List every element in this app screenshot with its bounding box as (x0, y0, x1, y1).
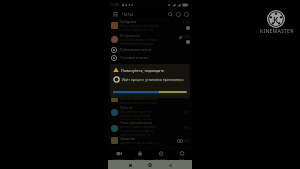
staticText: Настройки (154, 157, 168, 160)
staticText: Голосовое в канале (120, 56, 149, 60)
button[interactable]: Recents (127, 162, 133, 168)
staticText: Звонки (135, 157, 144, 160)
staticText: 9:31 (184, 111, 190, 115)
staticText: K (273, 14, 279, 25)
button[interactable]: Home (147, 162, 153, 168)
button[interactable]: Работа (108, 105, 192, 120)
staticText: на следующей неделе (120, 118, 153, 120)
staticText: 9:58 (184, 96, 190, 100)
staticText: Заметки (120, 136, 135, 141)
staticText: 11:06 (111, 3, 120, 7)
staticText: 10:47 (183, 35, 190, 39)
staticText: 7 (187, 40, 189, 44)
button[interactable]: Calls (174, 10, 182, 18)
staticText: Telegram (120, 19, 136, 24)
staticText: Контакты (113, 157, 125, 160)
button[interactable]: Чаты (171, 150, 192, 161)
staticText: полезные ссылки тут (120, 133, 151, 136)
button[interactable]: Чаты Дизайнеров (108, 120, 192, 136)
staticText: разные новости дизайна (120, 125, 157, 129)
staticText: KINEMASTER (260, 28, 294, 35)
button[interactable]: Search (166, 10, 174, 18)
staticText: Публикация в канале (120, 48, 152, 52)
staticText: коротко о том что надо тут (120, 141, 160, 145)
button[interactable]: Telegram (108, 18, 192, 32)
button[interactable]: More options (182, 10, 190, 18)
staticText: и много нового в этом (120, 28, 153, 32)
staticText: Работа (120, 105, 133, 110)
staticText: Ссылка на видео, которое (120, 38, 158, 42)
staticText: Пожалуйста, подождите (121, 68, 165, 73)
button[interactable]: Menu (112, 10, 119, 17)
staticText: Идёт процесс установки приложения (122, 77, 184, 82)
staticText: 9:04 (184, 126, 190, 130)
button[interactable]: Голосовое в канале (108, 54, 192, 62)
staticText: Чаты Дизайнеров (120, 120, 152, 125)
staticText: 8:42 (184, 139, 190, 143)
button[interactable]: Заметки (108, 136, 192, 145)
staticText: Избранное (120, 33, 140, 38)
staticText: Чаты (122, 11, 134, 17)
staticText: и сроки выполнения (120, 114, 151, 118)
button[interactable]: Публикация в канале (108, 46, 192, 54)
staticText: Новое обновление уже тут (120, 24, 159, 28)
staticText: 3 (187, 26, 189, 30)
staticText: Вышла новая бета версия (120, 97, 159, 101)
staticText: 11:03 (183, 21, 190, 25)
button[interactable]: Избранное (108, 32, 192, 46)
staticText: для тех кто хочет тестить (120, 101, 157, 105)
button[interactable]: Звонки (129, 150, 150, 161)
staticText: обязательно посмотри (120, 42, 154, 46)
staticText: Обсуждение проекта (120, 110, 151, 114)
staticText: Чаты (178, 157, 185, 160)
staticText: Обновления (120, 92, 143, 97)
button[interactable]: Контакты (108, 150, 129, 161)
staticText: обсуждения и вопросы (120, 129, 154, 133)
button[interactable]: Настройки (150, 150, 171, 161)
button[interactable]: Back (167, 162, 173, 168)
button[interactable]: Обновления (108, 91, 192, 105)
